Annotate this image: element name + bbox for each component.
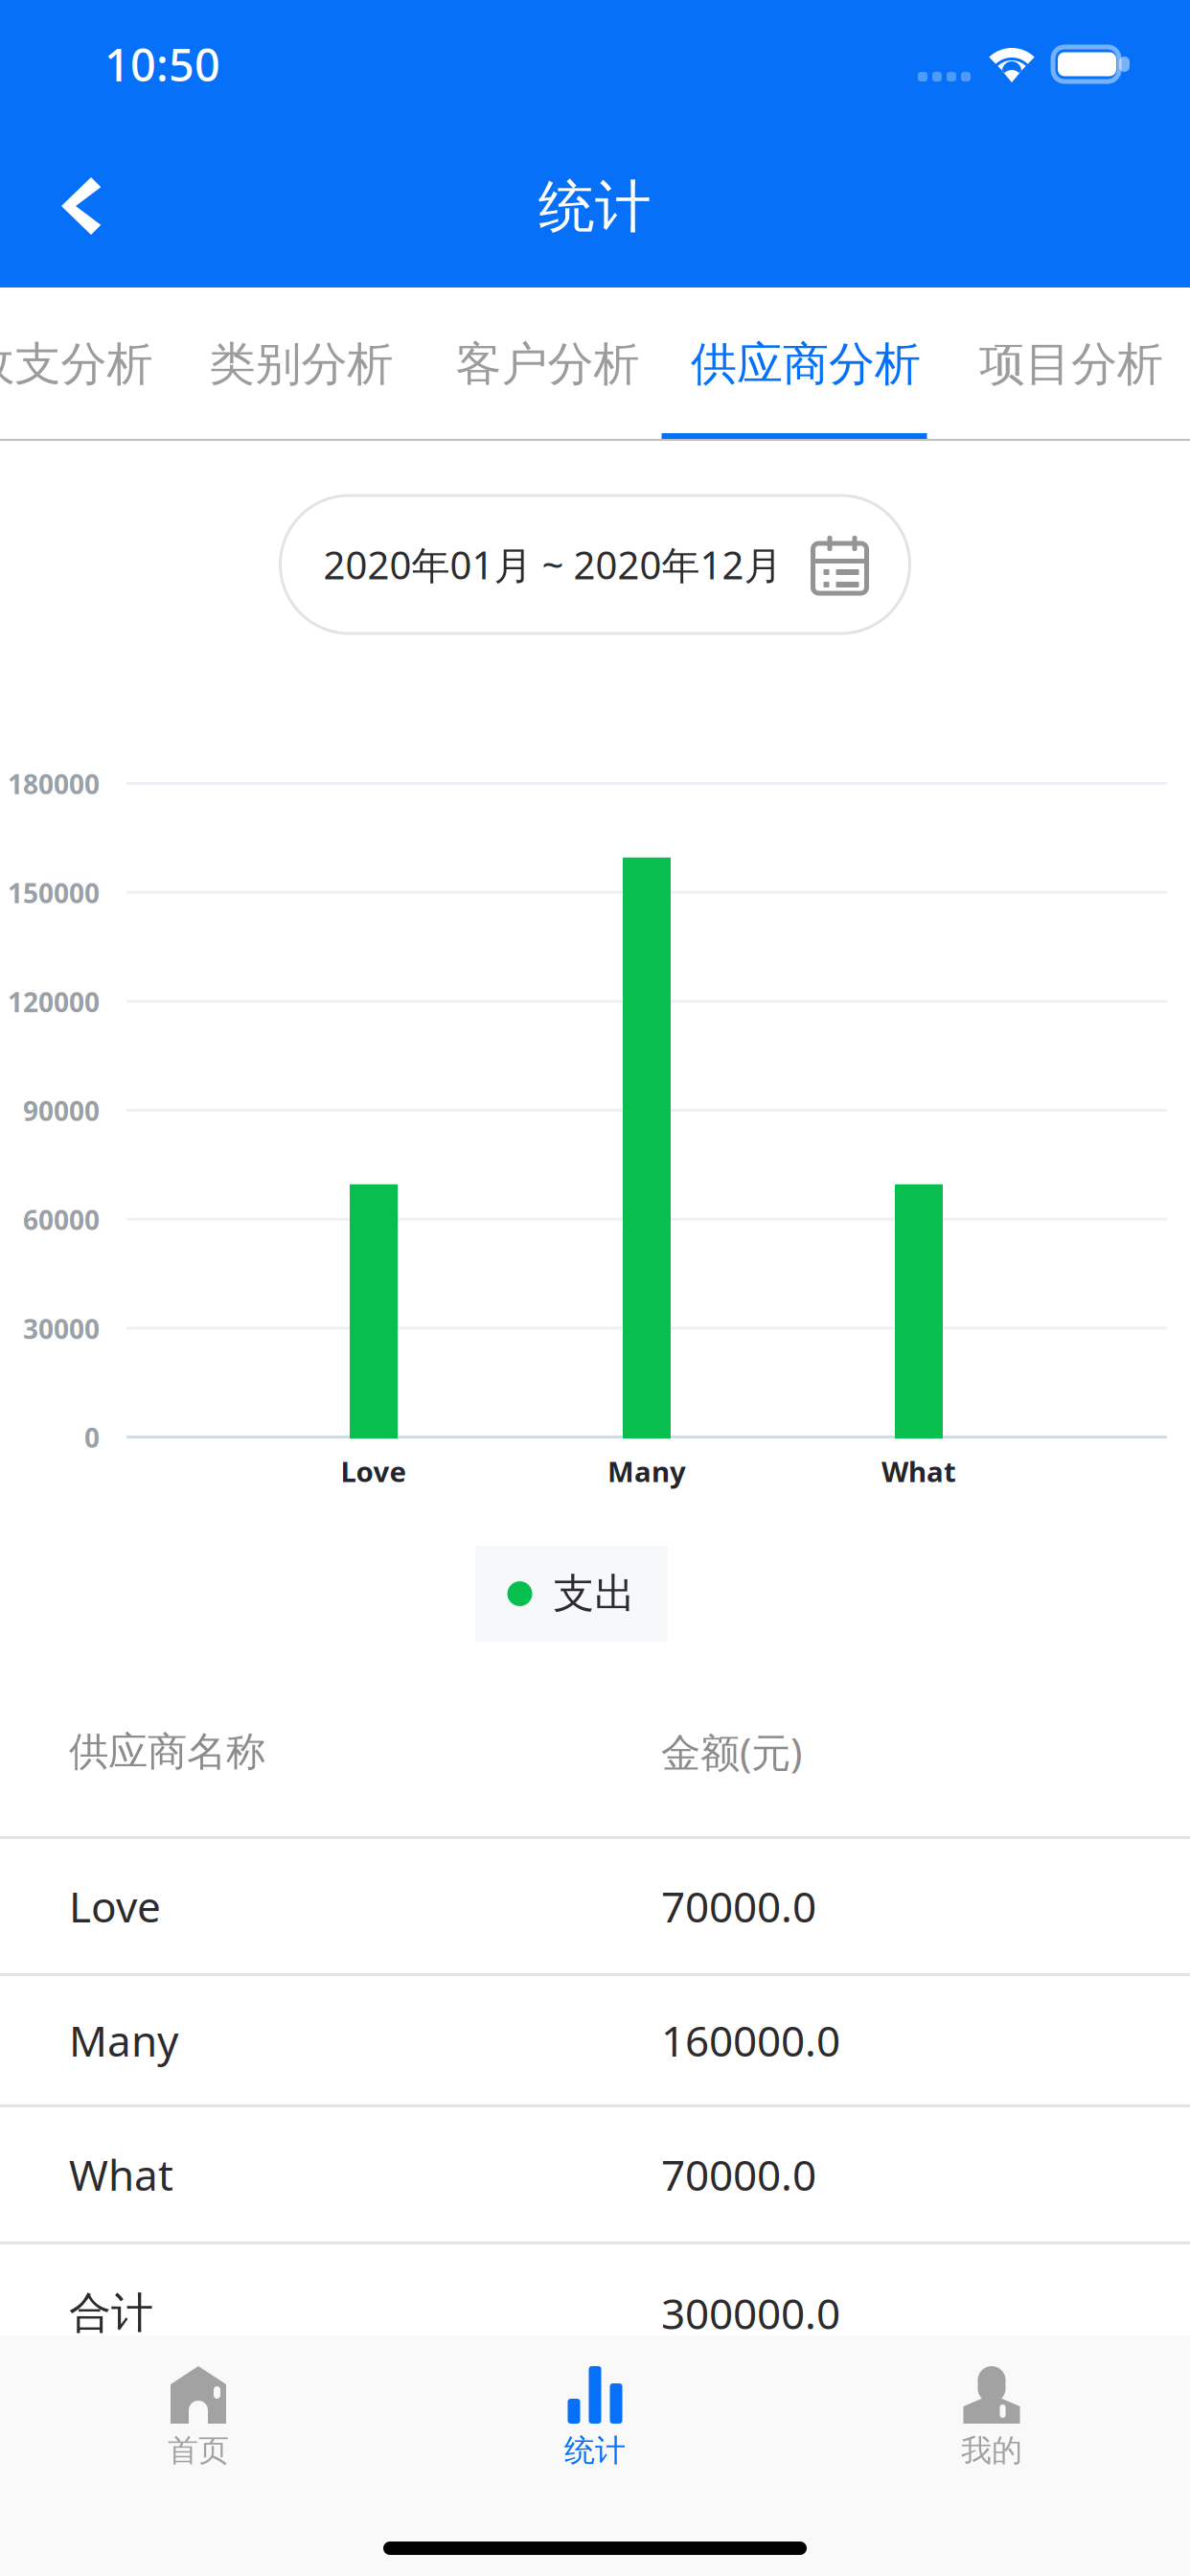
button[interactable]: 供应商分析	[674, 287, 938, 448]
button[interactable]: 项目分析	[938, 287, 1190, 448]
staticText: 项目分析	[979, 336, 1163, 392]
button[interactable]: 统计	[397, 2335, 793, 2466]
button[interactable]: 客户分析	[422, 287, 674, 448]
staticText: 0	[84, 1420, 100, 1455]
button[interactable]: 类别分析	[181, 287, 422, 448]
button[interactable]: Back	[0, 126, 161, 287]
staticText: 120000	[8, 984, 100, 1020]
staticText: Love	[69, 1878, 161, 1934]
staticText: 10:50	[104, 34, 220, 94]
staticText: What	[69, 2146, 173, 2202]
staticText: 70000.0	[661, 2146, 816, 2202]
staticText: Many	[69, 2012, 178, 2068]
button[interactable]: 2020年01月 ~ 2020年12月	[280, 495, 910, 633]
staticText: 70000.0	[661, 1878, 816, 1934]
staticText: 支出	[553, 1569, 636, 1619]
button[interactable]: 首页	[0, 2335, 397, 2466]
staticText: Love	[341, 1452, 407, 1490]
staticText: 150000	[8, 875, 100, 911]
staticText: 首页	[168, 2432, 229, 2469]
staticText: 60000	[23, 1202, 100, 1237]
staticText: 160000.0	[661, 2012, 840, 2068]
staticText: 合计	[69, 2287, 153, 2339]
staticText: 30000	[23, 1311, 100, 1346]
staticText: 统计	[564, 2432, 626, 2469]
staticText: 2020年01月 ~ 2020年12月	[323, 539, 782, 590]
staticText: 供应商分析	[691, 336, 921, 392]
button[interactable]: 收支分析	[0, 287, 181, 448]
staticText: 金额(元)	[661, 1726, 802, 1778]
staticText: 统计	[538, 172, 652, 242]
staticText: 180000	[8, 766, 100, 802]
staticText: 300000.0	[661, 2285, 840, 2341]
staticText: 供应商名称	[69, 1727, 265, 1776]
staticText: What	[881, 1452, 956, 1490]
button[interactable]: 我的	[793, 2335, 1190, 2466]
staticText: 收支分析	[0, 336, 153, 392]
staticText: 90000	[23, 1093, 100, 1129]
staticText: Many	[607, 1452, 686, 1490]
staticText: 类别分析	[209, 336, 393, 392]
staticText: 客户分析	[456, 336, 640, 392]
staticText: 我的	[961, 2432, 1022, 2469]
